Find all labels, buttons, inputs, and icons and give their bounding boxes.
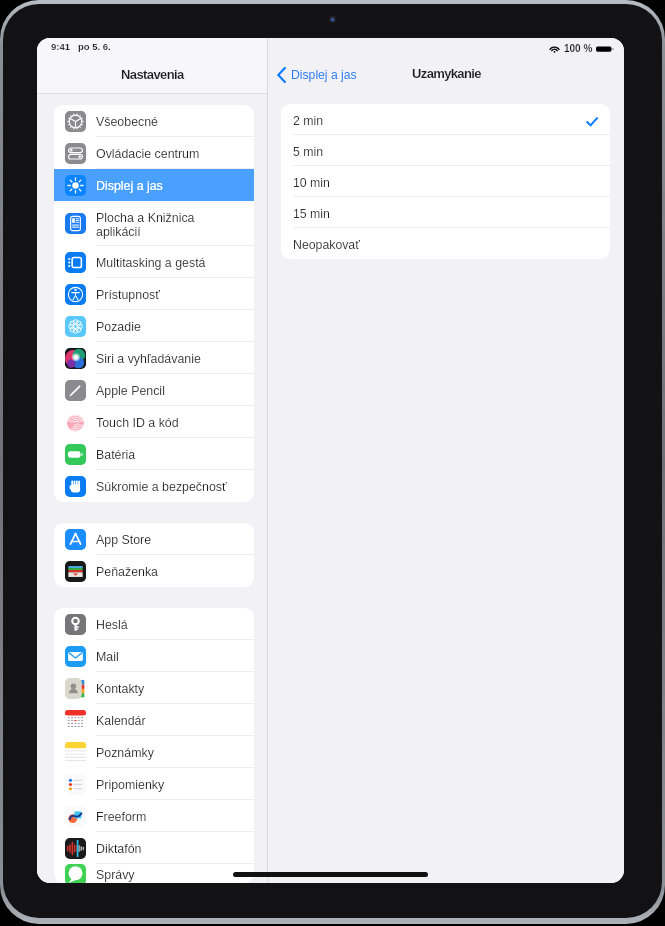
staticText: Siri a vyhľadávanie bbox=[96, 352, 201, 366]
staticText: Apple Pencil bbox=[96, 384, 165, 398]
staticText: Súkromie a bezpečnosť bbox=[96, 480, 227, 494]
button[interactable]: Kalendár bbox=[54, 704, 254, 736]
button[interactable]: Prístupnosť bbox=[54, 278, 254, 310]
button[interactable]: Back bbox=[277, 67, 357, 83]
staticText: 10 min bbox=[293, 176, 330, 190]
staticText: 15 min bbox=[293, 207, 330, 221]
staticText: Mail bbox=[96, 650, 119, 664]
staticText: Diktafón bbox=[96, 842, 142, 856]
button[interactable]: Neopakovať bbox=[281, 228, 610, 259]
button[interactable]: Ovládacie centrum bbox=[54, 137, 254, 169]
staticText: Plocha a Knižnica aplikácií bbox=[96, 211, 195, 239]
button[interactable]: 15 min bbox=[281, 197, 610, 228]
button[interactable]: Displej a jas bbox=[54, 169, 254, 201]
button[interactable]: Heslá bbox=[54, 608, 254, 640]
button[interactable]: Plocha a Knižnica aplikácií bbox=[54, 201, 254, 246]
staticText: Kontakty bbox=[96, 682, 145, 696]
staticText: Kalendár bbox=[96, 714, 146, 728]
other: Back bbox=[277, 67, 286, 83]
button[interactable]: Správy bbox=[54, 864, 254, 883]
button[interactable]: Mail bbox=[54, 640, 254, 672]
button[interactable]: Všeobecné bbox=[54, 105, 254, 137]
staticText: Batéria bbox=[96, 448, 136, 462]
staticText: 2 min bbox=[293, 114, 324, 128]
staticText: Prístupnosť bbox=[96, 288, 160, 302]
button[interactable]: Batéria bbox=[54, 438, 254, 470]
button[interactable]: 2 min bbox=[281, 104, 610, 135]
staticText: Správy bbox=[96, 868, 135, 882]
staticText: Ovládacie centrum bbox=[96, 147, 200, 161]
staticText: Poznámky bbox=[96, 746, 154, 760]
button[interactable]: Touch ID a kód bbox=[54, 406, 254, 438]
staticText: Heslá bbox=[96, 618, 128, 632]
staticText: Nastavenia bbox=[121, 67, 184, 82]
button[interactable]: Multitasking a gestá bbox=[54, 246, 254, 278]
staticText: Pripomienky bbox=[96, 778, 165, 792]
staticText: Peňaženka bbox=[96, 565, 159, 579]
button[interactable]: Peňaženka bbox=[54, 555, 254, 587]
button[interactable]: Diktafón bbox=[54, 832, 254, 864]
staticText: Touch ID a kód bbox=[96, 416, 179, 430]
staticText: Uzamykanie bbox=[412, 66, 481, 81]
staticText: 100 % bbox=[564, 43, 593, 54]
staticText: Freeform bbox=[96, 810, 147, 824]
button[interactable]: Pozadie bbox=[54, 310, 254, 342]
button[interactable]: Pripomienky bbox=[54, 768, 254, 800]
button[interactable]: Súkromie a bezpečnosť bbox=[54, 470, 254, 502]
staticText: Všeobecné bbox=[96, 115, 159, 129]
staticText: Pozadie bbox=[96, 320, 141, 334]
staticText: 9:41 po 5. 6. bbox=[51, 41, 111, 52]
staticText: Displej a jas bbox=[96, 179, 163, 193]
button[interactable]: Freeform bbox=[54, 800, 254, 832]
button[interactable]: 10 min bbox=[281, 166, 610, 197]
staticText: 5 min bbox=[293, 145, 324, 159]
button[interactable]: Kontakty bbox=[54, 672, 254, 704]
button[interactable]: 5 min bbox=[281, 135, 610, 166]
staticText: Neopakovať bbox=[293, 238, 360, 252]
staticText: Displej a jas bbox=[291, 68, 357, 82]
button[interactable]: Poznámky bbox=[54, 736, 254, 768]
button[interactable]: Siri a vyhľadávanie bbox=[54, 342, 254, 374]
button[interactable]: Apple Pencil bbox=[54, 374, 254, 406]
staticText: App Store bbox=[96, 533, 152, 547]
staticText: Multitasking a gestá bbox=[96, 256, 206, 270]
button[interactable]: App Store bbox=[54, 523, 254, 555]
